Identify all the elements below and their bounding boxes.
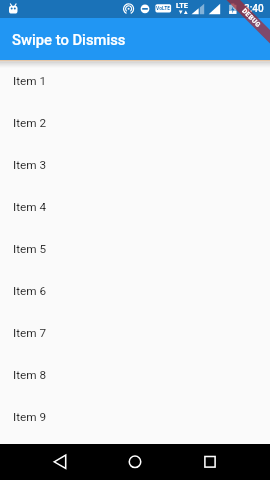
button[interactable]: Item 7 [0,312,270,354]
staticText: Item 7 [13,326,47,340]
staticText: Swipe to Dismiss [12,31,126,48]
staticText: Item 9 [13,410,47,424]
button[interactable]: Item 6 [0,270,270,312]
staticText: VoLTE [156,5,171,11]
button[interactable]: Item 5 [0,228,270,270]
staticText: Item 5 [13,242,47,256]
button[interactable]: Item 8 [0,354,270,396]
staticText: Item 1 [13,74,47,88]
staticText: Item 4 [13,200,47,214]
button[interactable]: Item 2 [0,102,270,144]
staticText: 3:40 [244,3,264,15]
button[interactable]: Item 4 [0,186,270,228]
button[interactable]: Home [117,444,153,480]
button[interactable]: Back [42,444,78,480]
button[interactable]: Item 3 [0,144,270,186]
staticText: LTE [176,1,188,10]
button[interactable]: Item 9 [0,396,270,438]
staticText: Item 6 [13,284,47,298]
button[interactable]: Recent apps [192,444,228,480]
staticText: Item 2 [13,116,47,130]
staticText: Item 8 [13,368,47,382]
button[interactable]: Item 1 [0,60,270,102]
staticText: Item 3 [13,158,47,172]
button[interactable]: Item 10 [0,438,270,480]
